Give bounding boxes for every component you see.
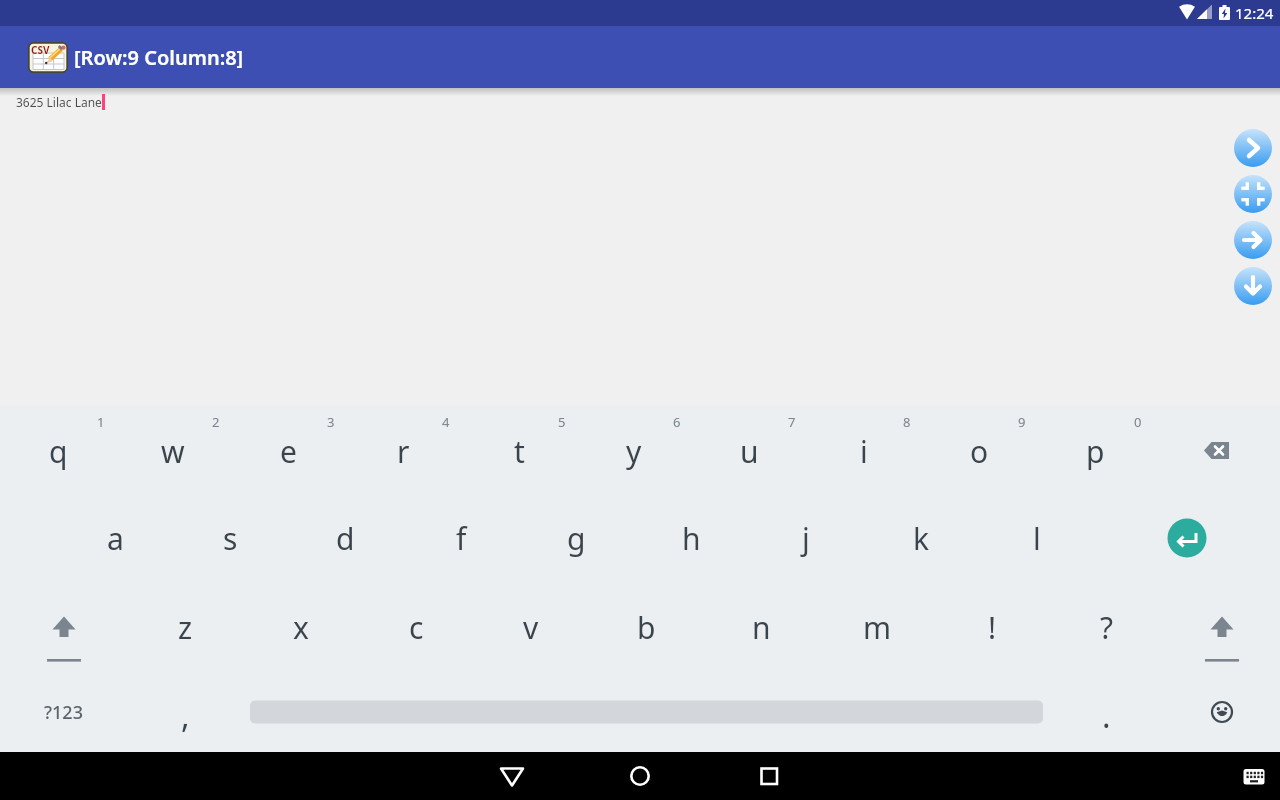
staticText: w [161,431,185,472]
staticText: [Row:9 Column:8] [74,44,244,71]
staticText: v [523,607,539,648]
staticText: m [863,607,892,648]
staticText: 8 [903,413,911,431]
staticText: x [293,607,309,648]
staticText: z [178,607,193,648]
staticText: 9 [1018,413,1026,431]
staticText: ? [1100,607,1114,648]
staticText: 6 [673,413,681,431]
staticText: n [752,607,771,648]
staticText: 0 [1134,413,1142,431]
staticText: p [1086,431,1105,472]
staticText: r [397,431,410,472]
staticText: t [514,431,525,472]
staticText: l [1033,518,1041,559]
staticText: i [860,431,868,472]
staticText: s [223,518,238,559]
staticText: g [567,518,586,559]
staticText: e [280,431,297,472]
staticText: 7 [788,413,796,431]
staticText: ! [988,607,997,648]
staticText: o [970,431,989,472]
staticText: j [802,518,810,559]
staticText: 12:24 [1235,3,1274,23]
staticText: 3625 Lilac Lane [16,94,102,110]
staticText: ?123 [44,700,83,725]
staticText: , [181,694,190,738]
staticText: 1 [97,413,105,431]
staticText: . [1102,694,1111,738]
staticText: a [107,518,124,559]
staticText: c [409,607,424,648]
staticText: d [336,518,355,559]
staticText: k [913,518,930,559]
staticText: f [456,518,467,559]
staticText: 3 [327,413,335,431]
staticText: CSV [31,43,50,57]
staticText: 5 [558,413,566,431]
staticText: 2 [212,413,220,431]
staticText: b [637,607,656,648]
staticText: u [740,431,759,472]
staticText: q [49,431,68,472]
staticText: h [682,518,701,559]
staticText: 4 [442,413,450,431]
staticText: y [626,431,642,472]
